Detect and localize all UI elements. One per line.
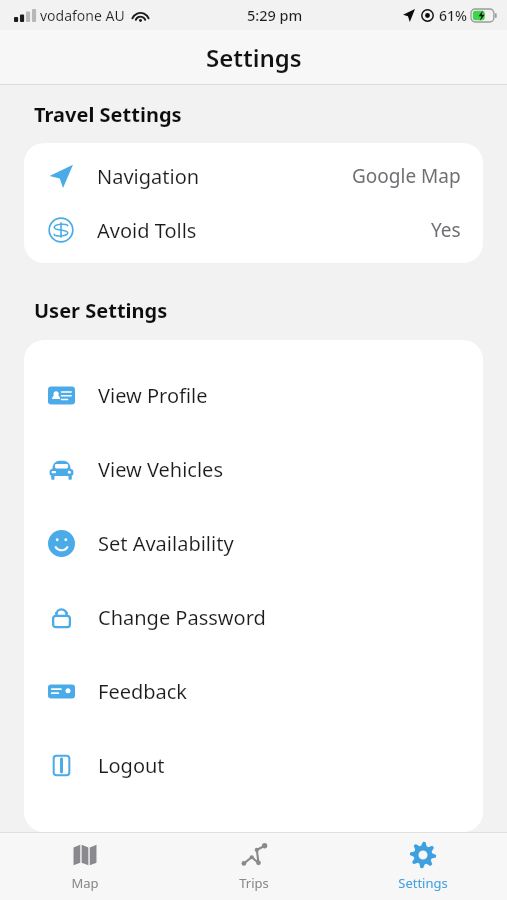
staticText: Navigation <box>97 163 200 190</box>
staticText: User Settings <box>34 297 168 324</box>
button[interactable]: Map <box>0 833 169 900</box>
staticText: 61% <box>439 6 467 25</box>
staticText: 5:29 pm <box>247 5 303 25</box>
staticText: Google Map <box>352 163 461 189</box>
button[interactable]: Navigation <box>24 149 483 203</box>
staticText: Feedback <box>98 678 188 705</box>
button[interactable]: View Profile <box>24 358 483 432</box>
staticText: Set Availability <box>98 530 234 557</box>
staticText: Change Password <box>98 604 266 631</box>
staticText: Avoid Tolls <box>97 217 197 244</box>
staticText: vodafone AU <box>40 6 125 25</box>
staticText: Trips <box>239 874 269 892</box>
button[interactable]: Feedback <box>24 654 483 728</box>
button[interactable]: Change Password <box>24 580 483 654</box>
button[interactable]: Trips <box>169 833 338 900</box>
button[interactable]: Settings <box>338 833 507 900</box>
staticText: View Vehicles <box>98 456 223 483</box>
button[interactable]: Logout <box>24 728 483 802</box>
staticText: Settings <box>206 41 302 74</box>
staticText: Logout <box>98 752 165 779</box>
staticText: Map <box>71 874 99 892</box>
staticText: Settings <box>398 874 448 892</box>
staticText: View Profile <box>98 382 208 409</box>
button[interactable]: View Vehicles <box>24 432 483 506</box>
staticText: Travel Settings <box>34 101 182 128</box>
staticText: Yes <box>431 217 461 243</box>
button[interactable]: Avoid Tolls <box>24 203 483 257</box>
button[interactable]: Set Availability <box>24 506 483 580</box>
